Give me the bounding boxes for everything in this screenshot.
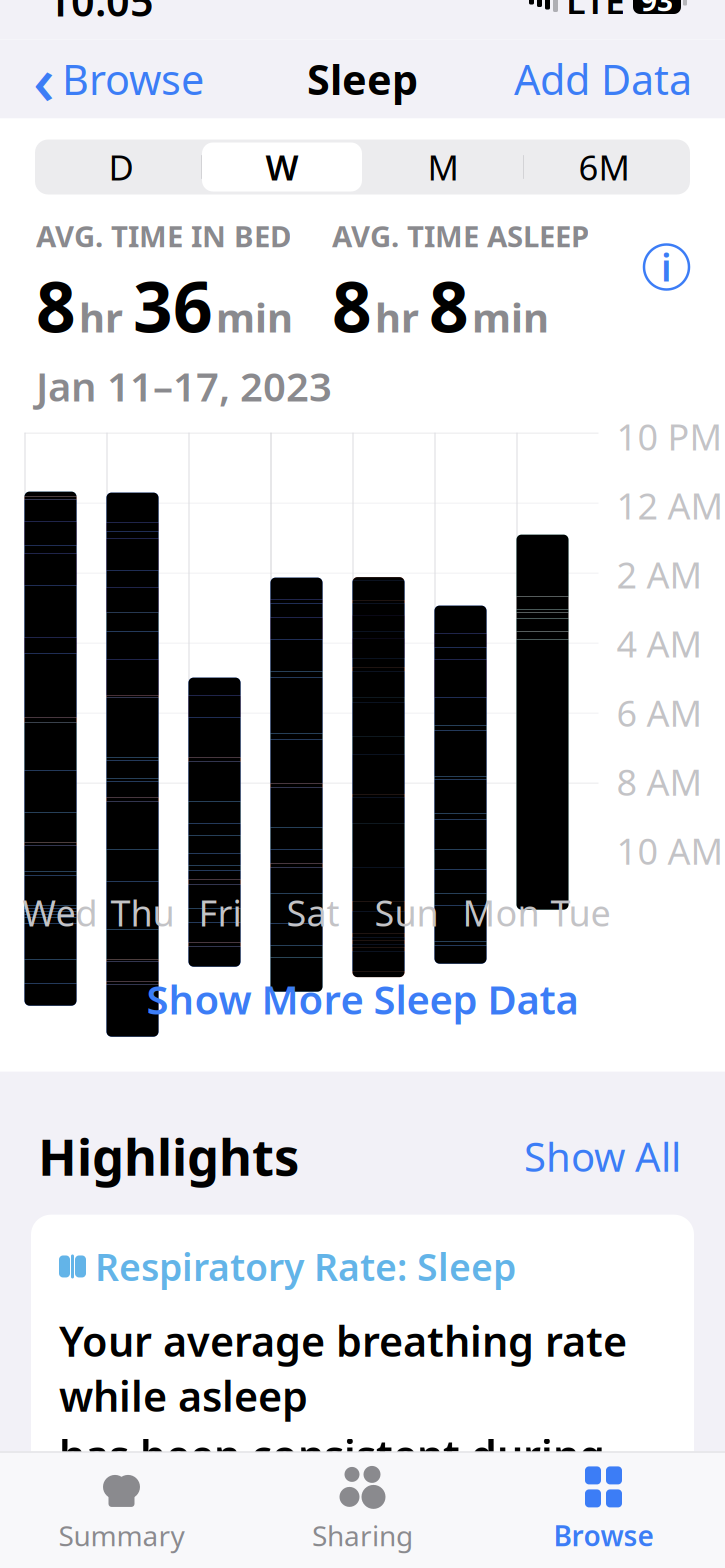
staticText: Sun	[374, 889, 438, 936]
button[interactable]: Show All	[518, 1122, 687, 1191]
button[interactable]: W	[202, 142, 362, 191]
button[interactable]: Add Data	[494, 44, 712, 114]
staticText: 10:05	[47, 0, 154, 28]
staticText: AVG. TIME IN BED	[36, 216, 291, 255]
staticText: Wed	[22, 889, 97, 936]
staticText: 2 AM	[616, 551, 702, 598]
button[interactable]: Show More Sleep Data	[116, 956, 608, 1042]
staticText: Show All	[524, 1130, 681, 1183]
staticText: 8	[429, 259, 469, 352]
staticText: Your average breathing rate while asleep	[59, 1313, 627, 1423]
staticText: Fri	[198, 889, 241, 936]
staticText: 8 AM	[616, 758, 702, 806]
staticText: LTE	[566, 0, 625, 24]
staticText: Summary	[58, 1517, 184, 1554]
button[interactable]: 6M	[524, 142, 684, 191]
staticText: Sharing	[312, 1517, 413, 1554]
staticText: 8	[36, 259, 76, 352]
staticText: 10 AM	[616, 827, 723, 875]
button[interactable]: M	[363, 142, 523, 191]
staticText: has been consistent during the last 14 d…	[59, 1427, 605, 1537]
staticText: min	[472, 290, 549, 343]
staticText: AVG. TIME ASLEEP	[332, 216, 589, 255]
staticText: i	[661, 242, 672, 292]
button[interactable]: Browse	[483, 1466, 724, 1552]
staticText: Add Data	[514, 52, 692, 106]
staticText: 8	[332, 259, 372, 352]
staticText: Jan 11–17, 2023	[36, 359, 332, 413]
staticText: D	[108, 144, 133, 190]
staticText: Sat	[286, 889, 339, 936]
button[interactable]: About sleep data	[644, 244, 689, 289]
staticText: ‹	[33, 35, 55, 123]
staticText: Browse	[553, 1517, 653, 1554]
staticText: M	[427, 144, 458, 190]
staticText: 10 PM	[616, 413, 722, 460]
button[interactable]: Summary	[1, 1466, 242, 1552]
button[interactable]: Sharing	[242, 1466, 483, 1552]
staticText: hr	[79, 290, 123, 343]
staticText: Respiratory Rate: Sleep	[95, 1242, 516, 1291]
button[interactable]: ‹	[13, 27, 224, 131]
button[interactable]: D	[41, 142, 201, 191]
staticText: Mon	[462, 889, 539, 936]
staticText: W	[265, 144, 298, 190]
staticText: hr	[375, 290, 419, 343]
staticText: min	[216, 290, 293, 343]
staticText: Browse	[62, 52, 204, 106]
staticText: Sleep	[307, 52, 418, 106]
staticText: 6 AM	[616, 689, 702, 737]
staticText: 4 AM	[616, 620, 702, 667]
staticText: Highlights	[38, 1122, 299, 1190]
staticText: 93	[641, 0, 673, 19]
staticText: Tue	[550, 889, 610, 936]
button[interactable]: Respiratory Rate: Sleep	[31, 1215, 694, 1568]
staticText: Show More Sleep Data	[146, 972, 578, 1026]
staticText: 36	[133, 259, 213, 352]
staticText: Thu	[110, 889, 174, 936]
staticText: 12 AM	[616, 482, 723, 529]
staticText: 6M	[578, 144, 629, 190]
